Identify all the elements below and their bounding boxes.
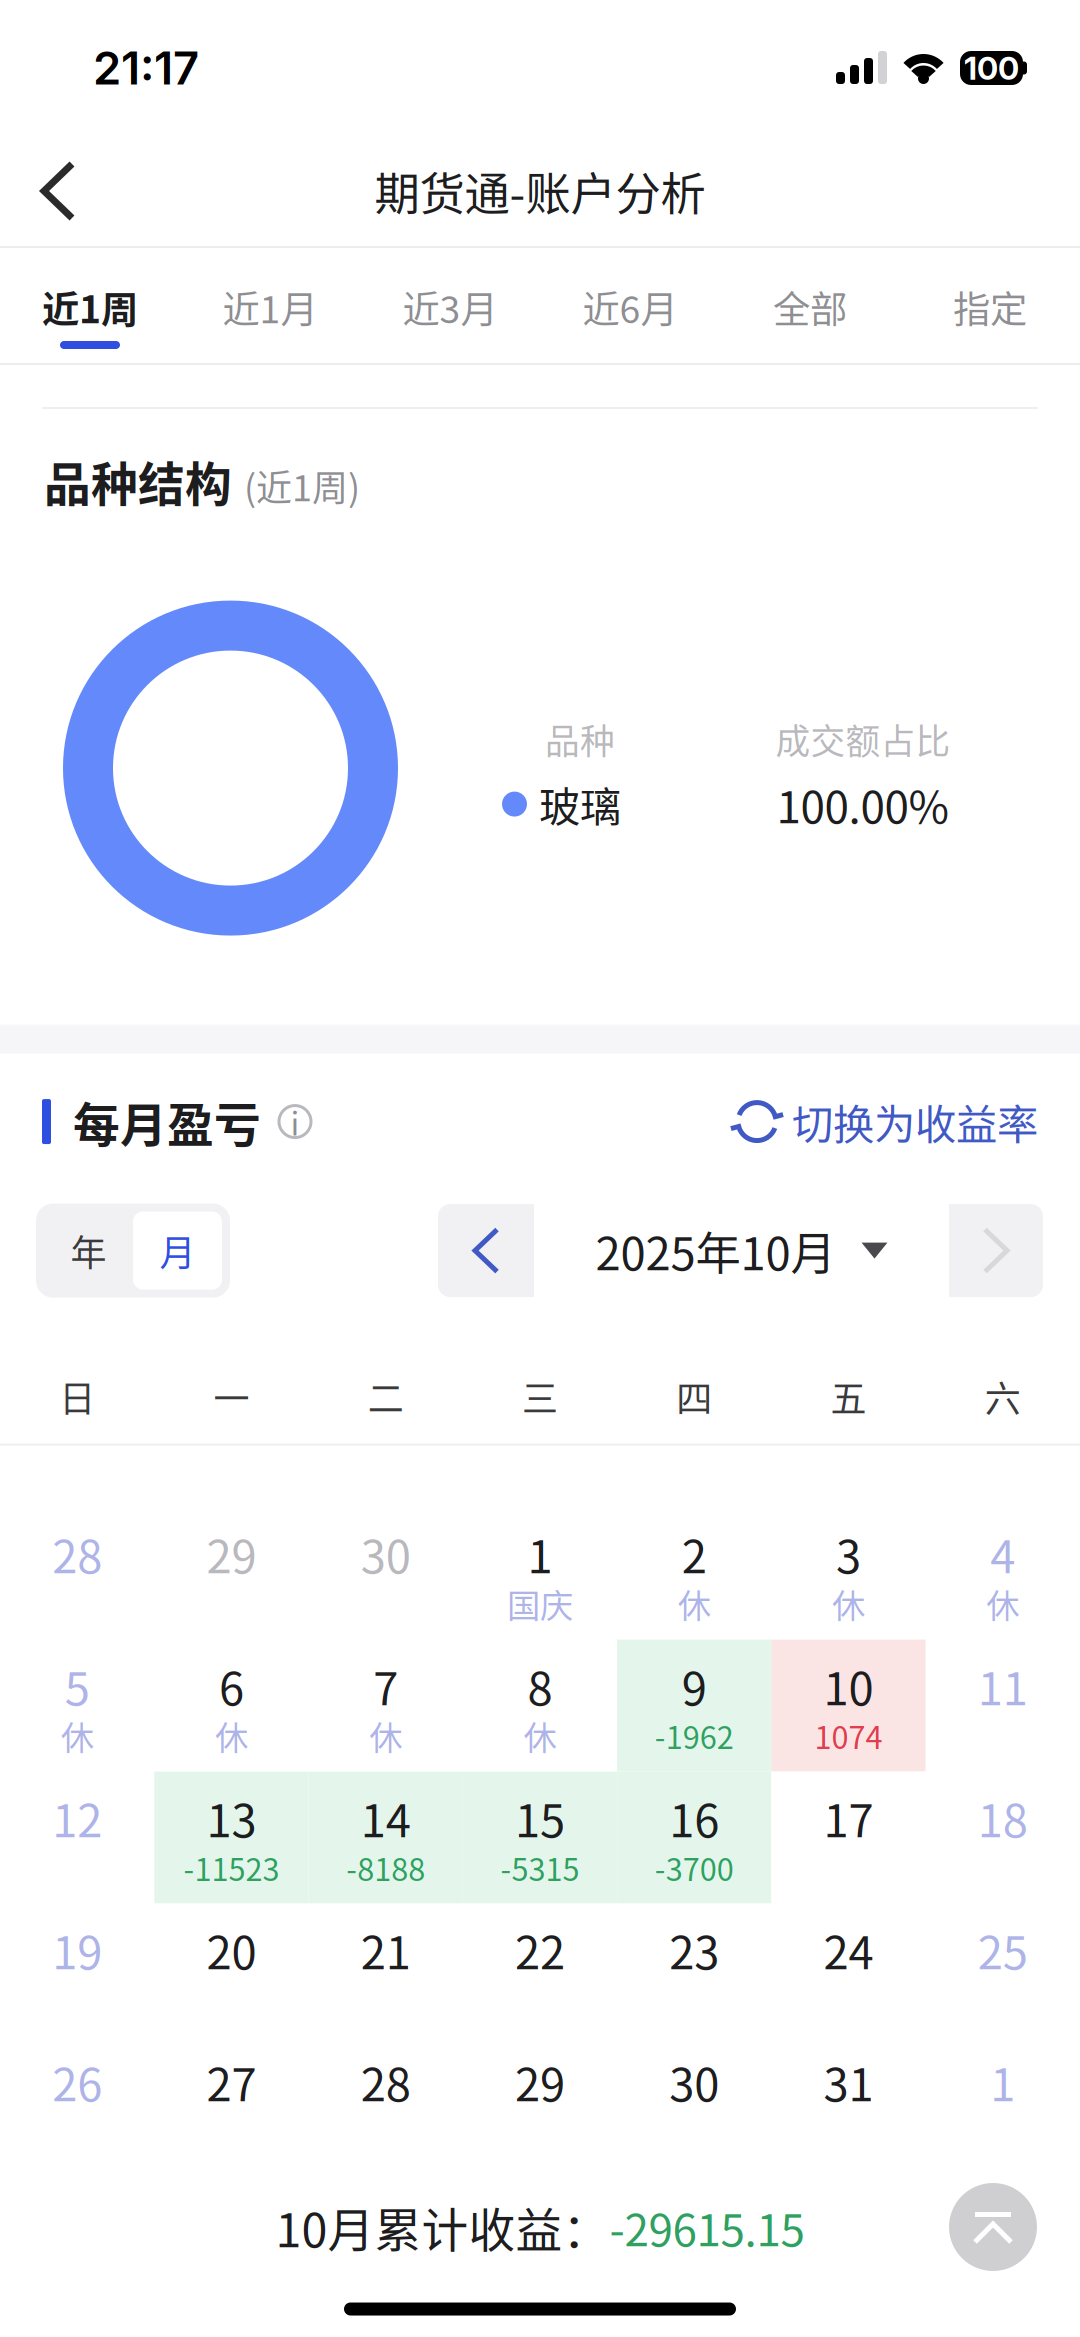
staticText: 期货通-账户分析 <box>374 158 705 224</box>
staticText: 一 <box>213 1370 249 1423</box>
staticText: 近6月 <box>582 280 677 334</box>
staticText: 休 <box>832 1579 865 1628</box>
staticText: 28 <box>52 1521 102 1586</box>
staticText: -1962 <box>655 1713 734 1758</box>
staticText: 7 <box>373 1653 398 1718</box>
staticText: 30 <box>669 2049 719 2114</box>
staticText: 1 <box>990 2049 1015 2114</box>
staticText: 100.00% <box>776 772 949 836</box>
staticText: 21 <box>361 1917 411 1982</box>
staticText: 27 <box>206 2049 256 2114</box>
staticText: 31 <box>824 2049 874 2114</box>
staticText: 24 <box>824 1917 874 1982</box>
button[interactable]: Info <box>261 1092 311 1152</box>
staticText: 4 <box>990 1521 1015 1586</box>
button[interactable]: Back <box>0 136 108 246</box>
staticText: 5 <box>65 1653 90 1718</box>
staticText: 12 <box>52 1785 102 1850</box>
staticText: 23 <box>669 1917 719 1982</box>
staticText: 2 <box>682 1521 707 1586</box>
staticText: 休 <box>678 1579 711 1628</box>
staticText: 25 <box>978 1917 1028 1982</box>
button[interactable]: 月 <box>133 1212 222 1290</box>
staticText: 品种结构 <box>44 447 232 515</box>
staticText: 近1月 <box>222 280 317 334</box>
staticText: 近1周 <box>42 280 138 334</box>
staticText: 2025年10月 <box>595 1218 835 1283</box>
staticText: 3 <box>836 1521 861 1586</box>
staticText: 20 <box>206 1917 256 1982</box>
button[interactable]: Next month <box>949 1204 1043 1297</box>
staticText: 休 <box>215 1711 248 1760</box>
staticText: 休 <box>369 1711 402 1760</box>
staticText: (近1周) <box>244 459 360 511</box>
button[interactable]: 指定 <box>900 248 1080 365</box>
staticText: 1074 <box>815 1713 883 1758</box>
staticText: 五 <box>831 1370 867 1423</box>
staticText: 14 <box>361 1785 411 1850</box>
staticText: 全部 <box>773 280 847 334</box>
staticText: -3700 <box>655 1845 734 1890</box>
staticText: 10月累计收益： <box>275 2193 609 2261</box>
staticText: 8 <box>527 1653 552 1718</box>
staticText: 三 <box>522 1370 558 1423</box>
staticText: 26 <box>52 2049 102 2114</box>
staticText: 成交额占比 <box>775 714 950 764</box>
staticText: 切换为收益率 <box>792 1092 1038 1151</box>
button[interactable]: Scroll to top <box>949 2183 1037 2271</box>
staticText: 21:17 <box>93 41 199 95</box>
staticText: 29 <box>515 2049 565 2114</box>
staticText: 10 <box>824 1653 874 1718</box>
staticText: 100 <box>964 49 1019 87</box>
staticText: 玻璃 <box>539 774 621 834</box>
button[interactable]: 近1周 <box>0 248 180 365</box>
staticText: 二 <box>368 1370 404 1423</box>
staticText: 6 <box>219 1653 244 1718</box>
staticText: 国庆 <box>507 1579 573 1628</box>
staticText: 15 <box>515 1785 565 1850</box>
staticText: 19 <box>52 1917 102 1982</box>
staticText: 11 <box>978 1653 1028 1718</box>
staticText: 指定 <box>953 280 1027 334</box>
staticText: 年 <box>70 1224 106 1277</box>
staticText: 16 <box>669 1785 719 1850</box>
staticText: 28 <box>361 2049 411 2114</box>
staticText: 品种 <box>545 714 615 764</box>
staticText: 29 <box>206 1521 256 1586</box>
staticText: 六 <box>985 1370 1021 1423</box>
staticText: 日 <box>59 1370 95 1423</box>
staticText: 1 <box>527 1521 552 1586</box>
button[interactable]: 近3月 <box>360 248 540 365</box>
button[interactable]: 近6月 <box>540 248 720 365</box>
staticText: 近3月 <box>402 280 497 334</box>
button[interactable]: 近1月 <box>180 248 360 365</box>
staticText: -11523 <box>183 1845 279 1890</box>
staticText: 月 <box>159 1224 195 1277</box>
staticText: i <box>290 1098 299 1145</box>
staticText: 休 <box>523 1711 556 1760</box>
button[interactable]: Previous month <box>438 1204 534 1297</box>
staticText: 9 <box>682 1653 707 1718</box>
staticText: 每月盈亏 <box>73 1088 261 1155</box>
button[interactable]: 全部 <box>720 248 900 365</box>
staticText: -8188 <box>346 1845 425 1890</box>
staticText: 22 <box>515 1917 565 1982</box>
staticText: 四 <box>676 1370 712 1423</box>
staticText: 休 <box>61 1711 94 1760</box>
staticText: -29615.15 <box>609 2195 804 2259</box>
staticText: 30 <box>361 1521 411 1586</box>
staticText: 18 <box>978 1785 1028 1850</box>
button[interactable]: 切换为收益率 <box>738 1078 1038 1165</box>
staticText: 17 <box>824 1785 874 1850</box>
button[interactable]: 年 <box>44 1212 133 1290</box>
staticText: 休 <box>986 1579 1019 1628</box>
staticText: 13 <box>206 1785 256 1850</box>
staticText: -5315 <box>500 1845 579 1890</box>
